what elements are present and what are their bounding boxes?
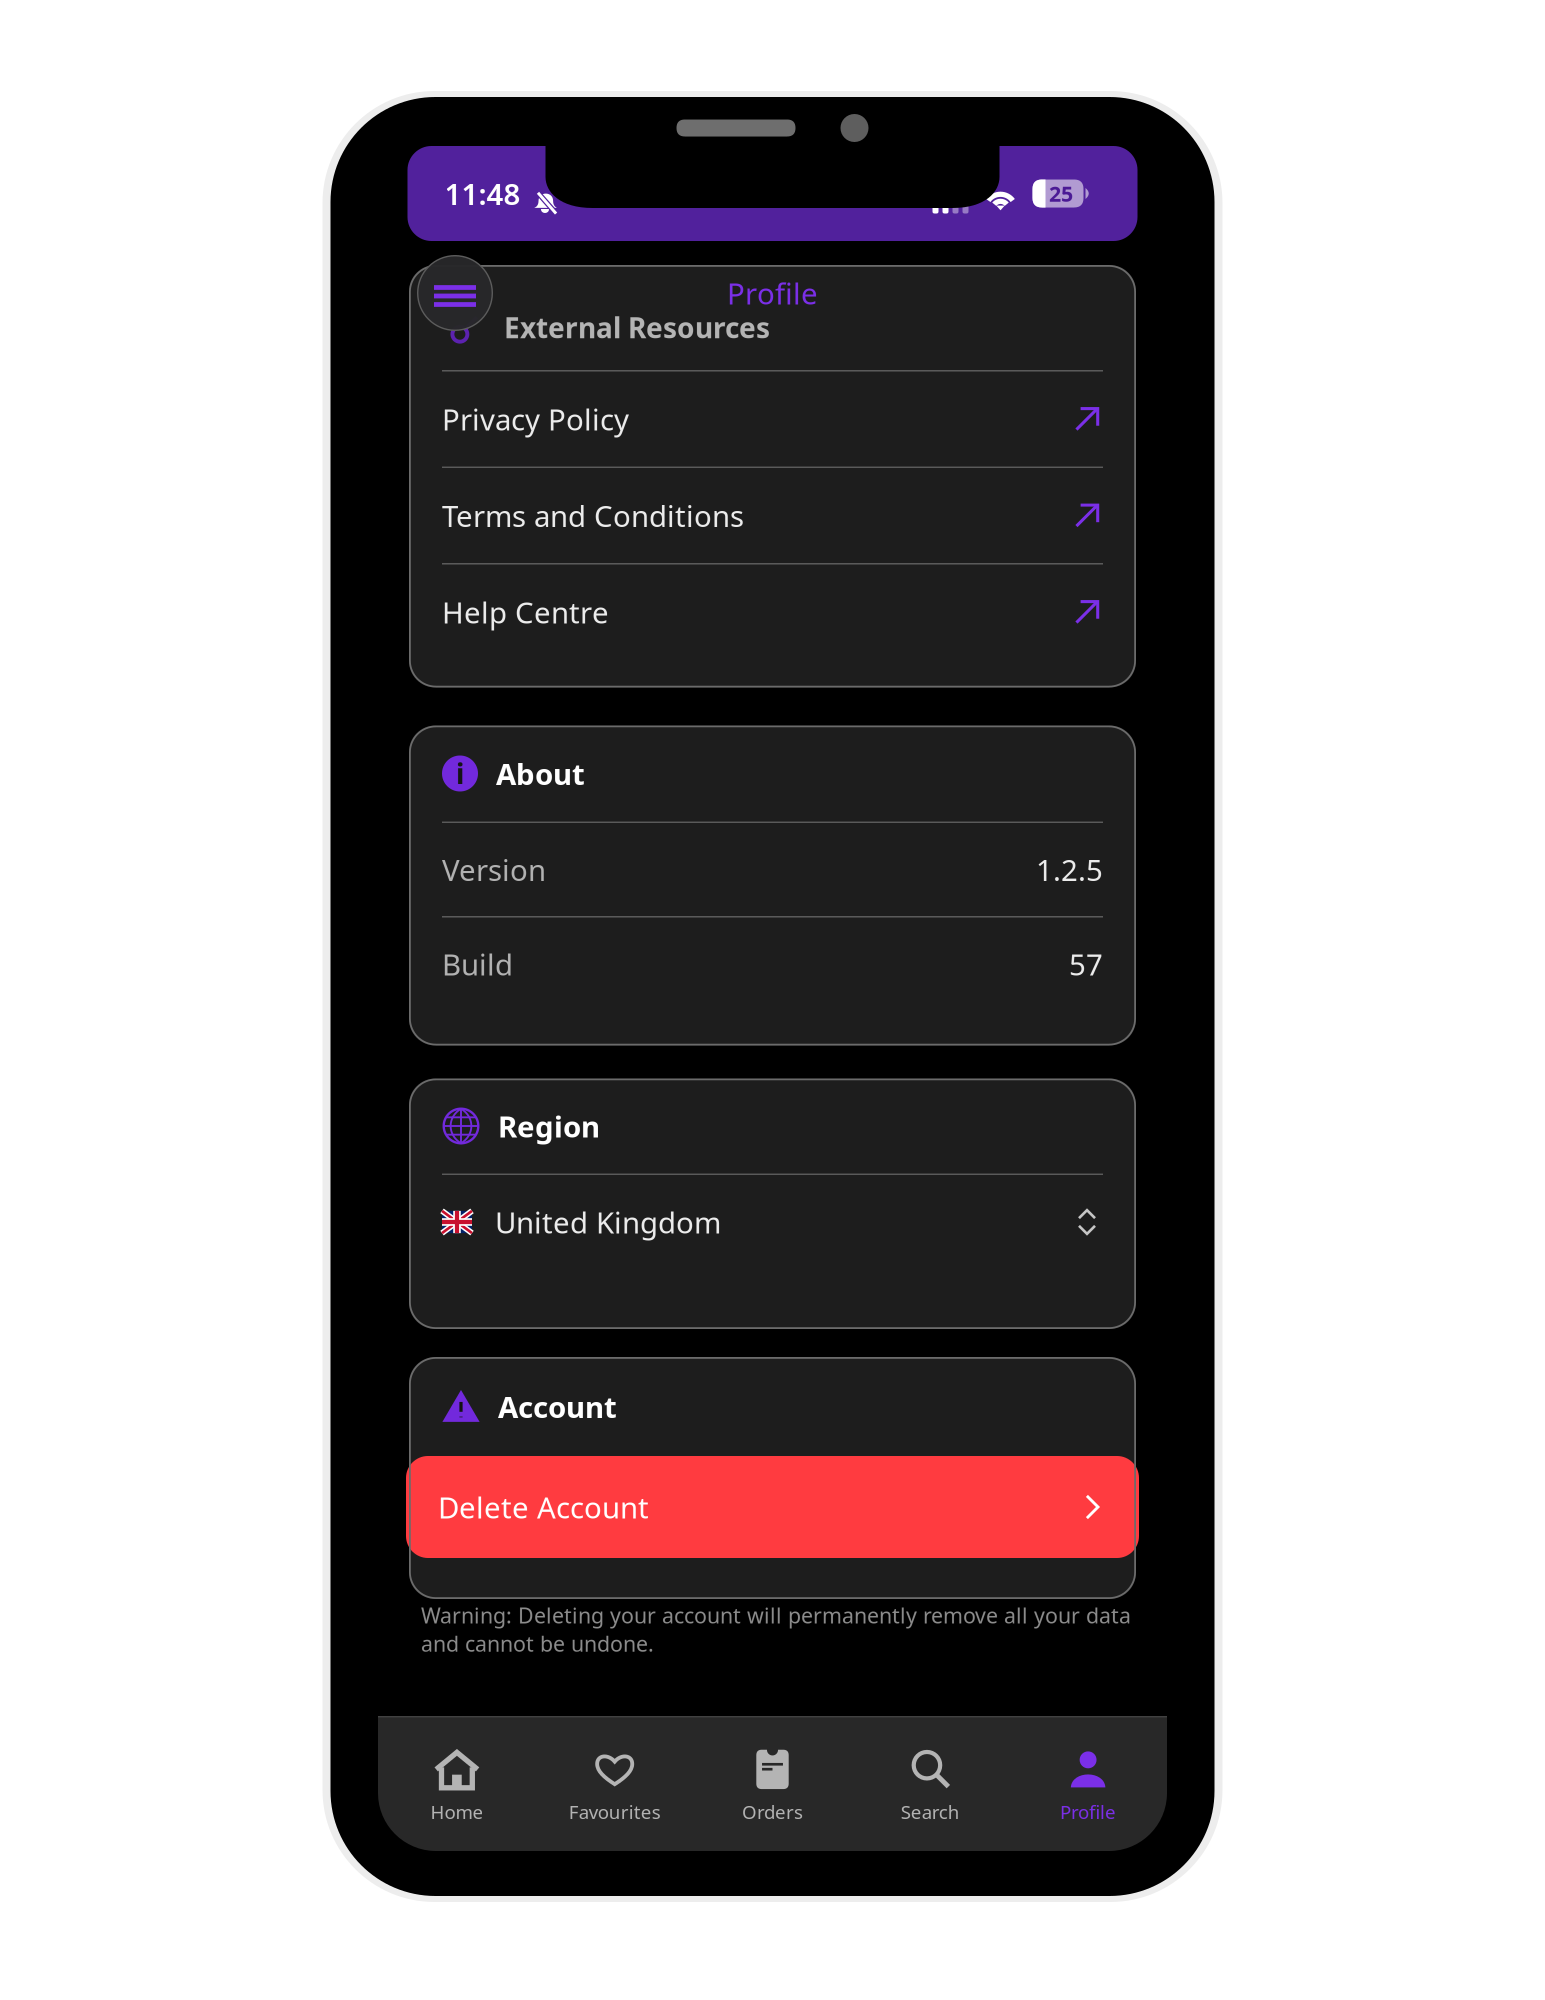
staticText: Privacy Policy bbox=[442, 399, 629, 438]
staticText: Profile bbox=[1060, 1799, 1116, 1824]
staticText: 57 bbox=[1069, 944, 1103, 983]
staticText: 25 bbox=[1049, 179, 1073, 208]
staticText: Warning: Deleting your account will perm… bbox=[421, 1601, 1131, 1658]
staticText: 1.2.5 bbox=[1036, 850, 1103, 889]
staticText: External Resources bbox=[504, 309, 770, 346]
button[interactable]: Orders bbox=[694, 1717, 851, 1850]
button[interactable]: Favourites bbox=[536, 1717, 694, 1850]
button[interactable]: Home bbox=[378, 1717, 536, 1850]
staticText: Terms and Conditions bbox=[442, 496, 744, 535]
staticText: Search bbox=[901, 1799, 960, 1824]
button[interactable]: Terms and Conditions bbox=[409, 468, 1136, 563]
staticText: Orders bbox=[742, 1799, 803, 1824]
staticText: Account bbox=[498, 1387, 617, 1426]
button[interactable]: Menu bbox=[417, 255, 493, 331]
staticText: Profile bbox=[727, 273, 818, 312]
button[interactable]: Privacy Policy bbox=[409, 371, 1136, 466]
button[interactable]: Search bbox=[851, 1717, 1009, 1850]
staticText: Favourites bbox=[569, 1799, 661, 1824]
button[interactable]: Profile bbox=[1009, 1717, 1167, 1850]
staticText: Delete Account bbox=[438, 1487, 649, 1526]
staticText: 11:48 bbox=[444, 174, 520, 213]
staticText: i bbox=[456, 755, 464, 792]
staticText: Version bbox=[442, 850, 546, 889]
button[interactable]: Help Centre bbox=[409, 564, 1136, 659]
button[interactable]: United Kingdom bbox=[409, 1175, 1136, 1269]
staticText: Home bbox=[430, 1799, 483, 1824]
staticText: Help Centre bbox=[442, 592, 609, 631]
button[interactable]: Delete Account bbox=[406, 1456, 1139, 1558]
staticText: United Kingdom bbox=[495, 1202, 721, 1241]
staticText: About bbox=[496, 754, 585, 793]
staticText: Build bbox=[442, 944, 513, 983]
staticText: Region bbox=[498, 1106, 600, 1145]
